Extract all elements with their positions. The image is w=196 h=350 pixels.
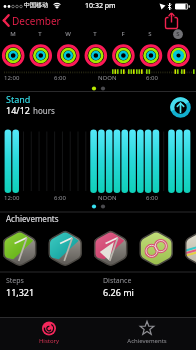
staticText: 6:00 (146, 74, 158, 82)
button[interactable] (134, 226, 179, 270)
staticText: 6:00 (54, 74, 66, 82)
staticText: 10:32 pm (85, 1, 116, 11)
staticText: S (144, 30, 156, 38)
staticText: T (34, 30, 46, 38)
staticText: Steps (6, 276, 24, 286)
staticText: 11,321 (6, 286, 35, 298)
button[interactable] (0, 226, 44, 270)
staticText: Achievements (122, 337, 172, 345)
staticText: Distance (103, 276, 132, 286)
staticText: NOON (98, 194, 117, 202)
staticText: History (29, 337, 69, 345)
button[interactable] (160, 10, 184, 32)
button[interactable] (166, 94, 194, 121)
staticText: Achievements (6, 213, 59, 224)
staticText: 6.26 mi (103, 286, 134, 298)
staticText: M (7, 30, 19, 38)
button[interactable] (89, 226, 134, 270)
staticText: W (62, 30, 74, 38)
staticText: 中国移动 (24, 1, 48, 9)
staticText: S (172, 30, 184, 38)
staticText: F (117, 30, 129, 38)
staticText: 14/12 (6, 104, 30, 116)
button[interactable] (44, 226, 89, 270)
staticText: hours (33, 105, 55, 116)
staticText: 12:00 (4, 74, 20, 82)
staticText: 6:00 (146, 194, 158, 202)
button[interactable] (0, 318, 98, 350)
button[interactable] (0, 12, 70, 30)
staticText: Stand (6, 93, 31, 105)
staticText: NOON (98, 74, 117, 82)
staticText: T (89, 30, 101, 38)
button[interactable] (98, 318, 196, 350)
staticText: 6:00 (54, 194, 66, 202)
staticText: December (12, 14, 61, 28)
staticText: 12:00 (4, 194, 20, 202)
